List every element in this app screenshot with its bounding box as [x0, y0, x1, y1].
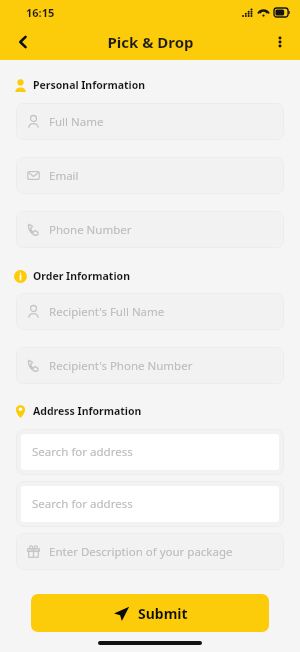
button[interactable]: Email: [16, 157, 284, 194]
staticText: Recipient's Phone Number: [49, 358, 193, 374]
button[interactable]: Enter Description of your package: [16, 533, 284, 570]
staticText: Personal Information: [33, 78, 146, 92]
button[interactable]: Back: [6, 25, 40, 59]
staticText: Email: [49, 168, 79, 184]
button[interactable]: Recipient's Full Name: [16, 293, 284, 330]
staticText: Recipient's Full Name: [49, 304, 165, 320]
button[interactable]: Phone Number: [16, 211, 284, 248]
button[interactable]: Search for address: [21, 486, 279, 522]
button[interactable]: Full Name: [16, 103, 284, 140]
staticText: Phone Number: [49, 222, 132, 238]
button[interactable]: Recipient's Phone Number: [16, 347, 284, 384]
staticText: Address Information: [33, 404, 142, 418]
staticText: Submit: [138, 604, 188, 623]
button[interactable]: More options: [263, 25, 297, 59]
button[interactable]: Search for address: [21, 434, 279, 470]
staticText: Pick & Drop: [107, 32, 194, 52]
staticText: Order Information: [33, 269, 130, 283]
staticText: Enter Description of your package: [49, 544, 233, 560]
staticText: 16:15: [26, 5, 55, 20]
staticText: Search for address: [32, 496, 133, 512]
button[interactable]: Submit: [31, 594, 269, 632]
staticText: Search for address: [32, 444, 133, 460]
staticText: Full Name: [49, 114, 104, 130]
